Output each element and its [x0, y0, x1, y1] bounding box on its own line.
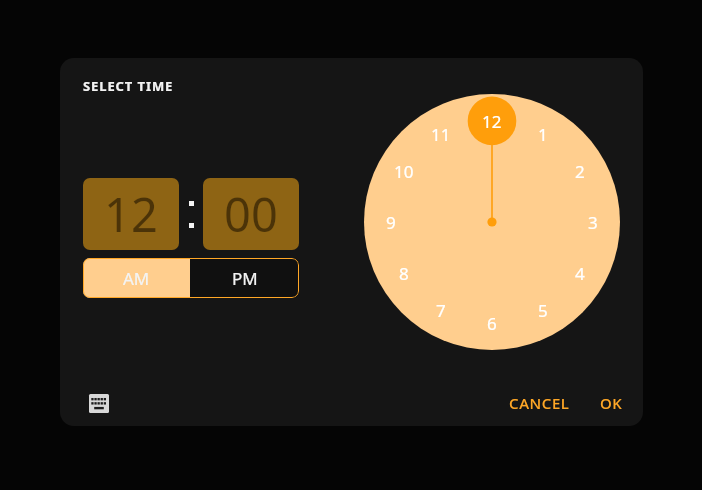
staticText: 11 [431, 123, 451, 146]
staticText: 3 [588, 211, 598, 234]
button[interactable]: Switch to text input mode [82, 386, 116, 420]
staticText: CANCEL [509, 393, 570, 413]
staticText: 00 [224, 182, 278, 246]
staticText: 2 [575, 160, 585, 183]
staticText: 1 [538, 123, 548, 146]
staticText: OK [600, 393, 623, 413]
button[interactable]: PM [190, 258, 299, 298]
staticText: AM [123, 267, 150, 290]
button[interactable]: OK [591, 387, 632, 419]
staticText: 12 [104, 182, 158, 246]
button[interactable]: AM [83, 258, 190, 298]
button[interactable]: 00 [203, 178, 299, 250]
staticText: 4 [575, 262, 585, 285]
button[interactable] [364, 94, 620, 350]
staticText: SELECT TIME [83, 77, 174, 95]
staticText: 6 [487, 312, 497, 335]
staticText: 10 [394, 160, 414, 183]
button[interactable]: CANCEL [500, 387, 579, 419]
other: Clock dial, 12 o'clock selected [364, 94, 620, 350]
staticText: 9 [386, 211, 396, 234]
button[interactable]: 12 [83, 178, 179, 250]
staticText: 7 [436, 299, 446, 322]
staticText: 5 [538, 299, 548, 322]
staticText: PM [232, 267, 258, 290]
staticText: 8 [399, 262, 409, 285]
staticText: 12 [482, 110, 502, 133]
